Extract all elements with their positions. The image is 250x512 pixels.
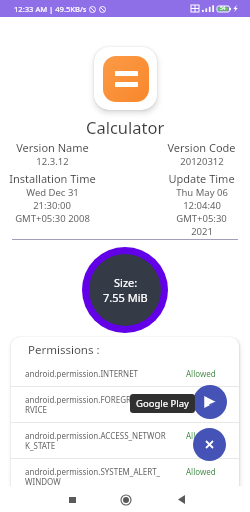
button[interactable]: Back [171,489,192,510]
staticText: Version Code [167,140,236,155]
staticText: android.permission.SYSTEM_ALERT_ WINDOW [25,466,186,487]
staticText: GMT+05:30 [176,212,227,225]
staticText: 12:04:40 [183,199,221,212]
staticText: 12.3.12 [36,155,69,168]
staticText: Allowed [186,430,216,441]
button[interactable]: android.permission.ACCESS_NETWOR K_STATE [11,423,239,458]
staticText: GMT+05:30 2008 [15,212,90,225]
staticText: Permissions : [28,342,100,358]
staticText: Allowed [186,368,216,379]
staticText: 7.55 MiB [103,290,148,305]
staticText: Wed Dec 31 [26,186,79,199]
staticText: Allowed [186,466,216,477]
staticText: 20120312 [180,155,224,168]
staticText: Thu May 06 [176,186,228,199]
button[interactable]: Home [115,489,136,510]
staticText: Google Play [136,397,189,410]
button[interactable]: android.permission.SYSTEM_ALERT_ WINDOW [11,459,239,494]
staticText: android.permission.INTERNET [25,368,186,379]
button[interactable]: android.permission.FOREGROUND_SE RVICE [11,387,239,422]
staticText: 12:33 AM | 49.5KB/s [14,4,87,14]
button[interactable]: Recents [62,489,83,510]
staticText: Calculator [86,116,165,138]
button[interactable]: Google Play [193,385,227,419]
staticText: 54 [220,5,226,12]
staticText: Update Time [168,171,235,186]
button[interactable]: android.permission.INTERNET [11,361,239,386]
staticText: Version Name [16,140,89,155]
staticText: 2021 [191,225,213,238]
staticText: 21:30:00 [33,199,71,212]
staticText: Size: [114,275,138,290]
staticText: android.permission.FOREGROUND_SE RVICE [25,394,186,415]
button[interactable]: App icon [94,47,157,110]
staticText: Installation Time [9,171,96,186]
staticText: android.permission.ACCESS_NETWOR K_STATE [25,430,186,451]
staticText: Allowed [186,394,216,405]
button[interactable]: Close [193,428,226,461]
